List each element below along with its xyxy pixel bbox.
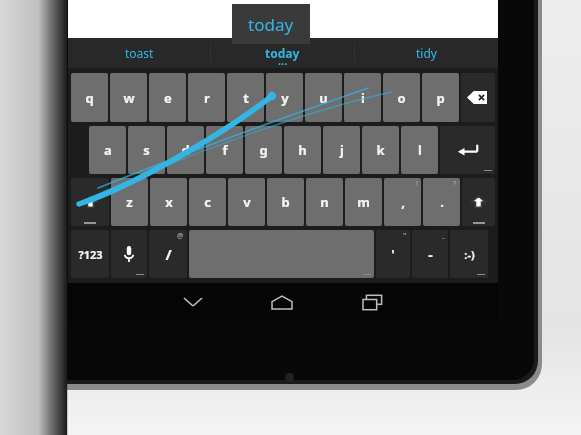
button[interactable]: toast xyxy=(68,38,210,68)
staticText: t xyxy=(243,89,249,107)
button[interactable]: u xyxy=(305,73,342,122)
staticText: u xyxy=(319,89,328,107)
staticText: ' xyxy=(391,245,395,263)
staticText: ! xyxy=(416,179,418,189)
staticText: e xyxy=(164,89,172,107)
staticText: j xyxy=(340,141,344,159)
staticText: p xyxy=(436,89,445,107)
button[interactable]: n xyxy=(306,178,343,226)
staticText: z xyxy=(126,193,133,211)
staticText: m xyxy=(357,193,370,211)
staticText: :-) xyxy=(464,247,475,262)
button[interactable]: r xyxy=(188,73,225,122)
staticText: l xyxy=(418,141,422,159)
staticText: q xyxy=(85,89,94,107)
staticText: k xyxy=(376,141,385,159)
staticText: s xyxy=(143,141,150,159)
staticText: y xyxy=(281,89,289,107)
button[interactable]: i xyxy=(344,73,381,122)
button[interactable]: Home xyxy=(237,283,327,321)
button[interactable]: a xyxy=(89,126,126,174)
button[interactable]: q xyxy=(71,73,108,122)
staticText: " xyxy=(403,231,407,241)
button[interactable]: today xyxy=(211,38,354,68)
staticText: ?123 xyxy=(78,247,103,262)
button[interactable]: e xyxy=(149,73,186,122)
button[interactable]: Voice input xyxy=(111,230,147,278)
staticText: g xyxy=(259,141,268,159)
staticText: today xyxy=(265,45,300,61)
staticText: - xyxy=(428,245,433,264)
button[interactable]: Enter xyxy=(440,126,495,174)
staticText: o xyxy=(397,89,406,107)
staticText: a xyxy=(104,141,112,159)
staticText: v xyxy=(243,193,251,211)
button[interactable]: h xyxy=(284,126,321,174)
button[interactable]: b xyxy=(267,178,304,226)
staticText: h xyxy=(298,141,307,159)
staticText: ... xyxy=(278,53,288,68)
button[interactable]: c xyxy=(189,178,226,226)
button[interactable]: v xyxy=(228,178,265,226)
button[interactable]: g xyxy=(245,126,282,174)
staticText: c xyxy=(204,193,211,211)
button[interactable]: - xyxy=(412,230,448,278)
staticText: x xyxy=(165,193,173,211)
button[interactable]: p xyxy=(422,73,459,122)
button[interactable]: / xyxy=(149,230,187,278)
button[interactable]: Backspace xyxy=(461,73,495,122)
button[interactable]: m xyxy=(345,178,382,226)
button[interactable]: Shift xyxy=(462,178,495,226)
staticText: / xyxy=(165,244,172,264)
button[interactable]: :-) xyxy=(450,230,488,278)
button[interactable]: , xyxy=(384,178,421,226)
button[interactable]: x xyxy=(150,178,187,226)
button[interactable]: j xyxy=(323,126,360,174)
button[interactable]: . xyxy=(423,178,460,226)
staticText: r xyxy=(204,89,210,107)
button[interactable]: ?123 xyxy=(71,230,109,278)
staticText: b xyxy=(281,193,290,211)
staticText: n xyxy=(320,193,329,211)
button[interactable]: o xyxy=(383,73,420,122)
staticText: ? xyxy=(453,179,457,189)
button[interactable]: d xyxy=(167,126,204,174)
button[interactable]: k xyxy=(362,126,399,174)
staticText: i xyxy=(361,89,365,107)
button[interactable]: t xyxy=(227,73,264,122)
staticText: , xyxy=(401,193,405,211)
button[interactable]: z xyxy=(111,178,148,226)
button[interactable]: y xyxy=(266,73,303,122)
button[interactable]: Recent apps xyxy=(327,283,417,321)
staticText: _ xyxy=(442,231,445,241)
button[interactable]: tidy xyxy=(355,38,498,68)
staticText: f xyxy=(222,141,228,159)
staticText: tidy xyxy=(416,45,437,61)
button[interactable]: Hide keyboard xyxy=(148,283,237,321)
staticText: d xyxy=(181,141,190,159)
staticText: today xyxy=(248,13,294,36)
staticText: toast xyxy=(125,45,154,61)
staticText: . xyxy=(440,193,444,211)
button[interactable]: s xyxy=(128,126,165,174)
button[interactable]: f xyxy=(206,126,243,174)
staticText: @ xyxy=(177,231,184,241)
staticText: w xyxy=(123,89,135,107)
button[interactable]: w xyxy=(110,73,147,122)
button[interactable]: l xyxy=(401,126,438,174)
button[interactable]: Shift xyxy=(71,178,109,226)
button[interactable]: ' xyxy=(376,230,410,278)
